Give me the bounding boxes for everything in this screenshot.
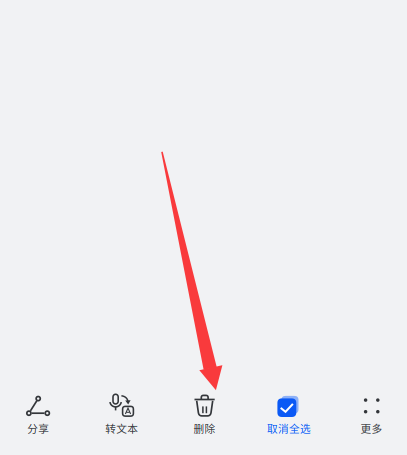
staticText: 删除 (194, 420, 216, 436)
button[interactable]: 删除 (198, 383, 208, 435)
button[interactable]: 转文本 (188, 383, 198, 435)
button[interactable]: 取消全选 (208, 383, 218, 435)
staticText: 取消全选 (267, 420, 311, 436)
staticText: 更多 (360, 420, 382, 436)
staticText: 转文本 (105, 420, 138, 436)
staticText: 分享 (27, 420, 49, 436)
